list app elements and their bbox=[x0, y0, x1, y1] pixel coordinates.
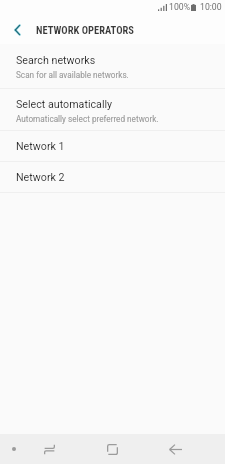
staticText: Automatically select preferred network. bbox=[16, 114, 159, 124]
staticText: 10:00 bbox=[200, 2, 222, 12]
button[interactable]: Recent apps bbox=[18, 434, 81, 464]
button[interactable]: Hide navigation bar bbox=[0, 434, 28, 464]
staticText: Network 2 bbox=[16, 171, 65, 184]
staticText: 100% bbox=[169, 2, 191, 12]
staticText: Scan for all available networks. bbox=[16, 70, 129, 80]
staticText: Network 1 bbox=[16, 140, 65, 153]
staticText: NETWORK OPERATORS bbox=[36, 24, 134, 36]
button[interactable]: Select automatically bbox=[0, 89, 225, 130]
staticText: Search networks bbox=[16, 54, 96, 67]
button[interactable]: Navigate up bbox=[0, 16, 34, 44]
button[interactable]: Network 1 bbox=[0, 131, 225, 161]
button[interactable]: Back bbox=[144, 434, 207, 464]
staticText: Select automatically bbox=[16, 98, 113, 111]
button[interactable]: Search networks bbox=[0, 44, 225, 88]
button[interactable]: Network 2 bbox=[0, 162, 225, 192]
button[interactable]: Home bbox=[81, 434, 144, 464]
